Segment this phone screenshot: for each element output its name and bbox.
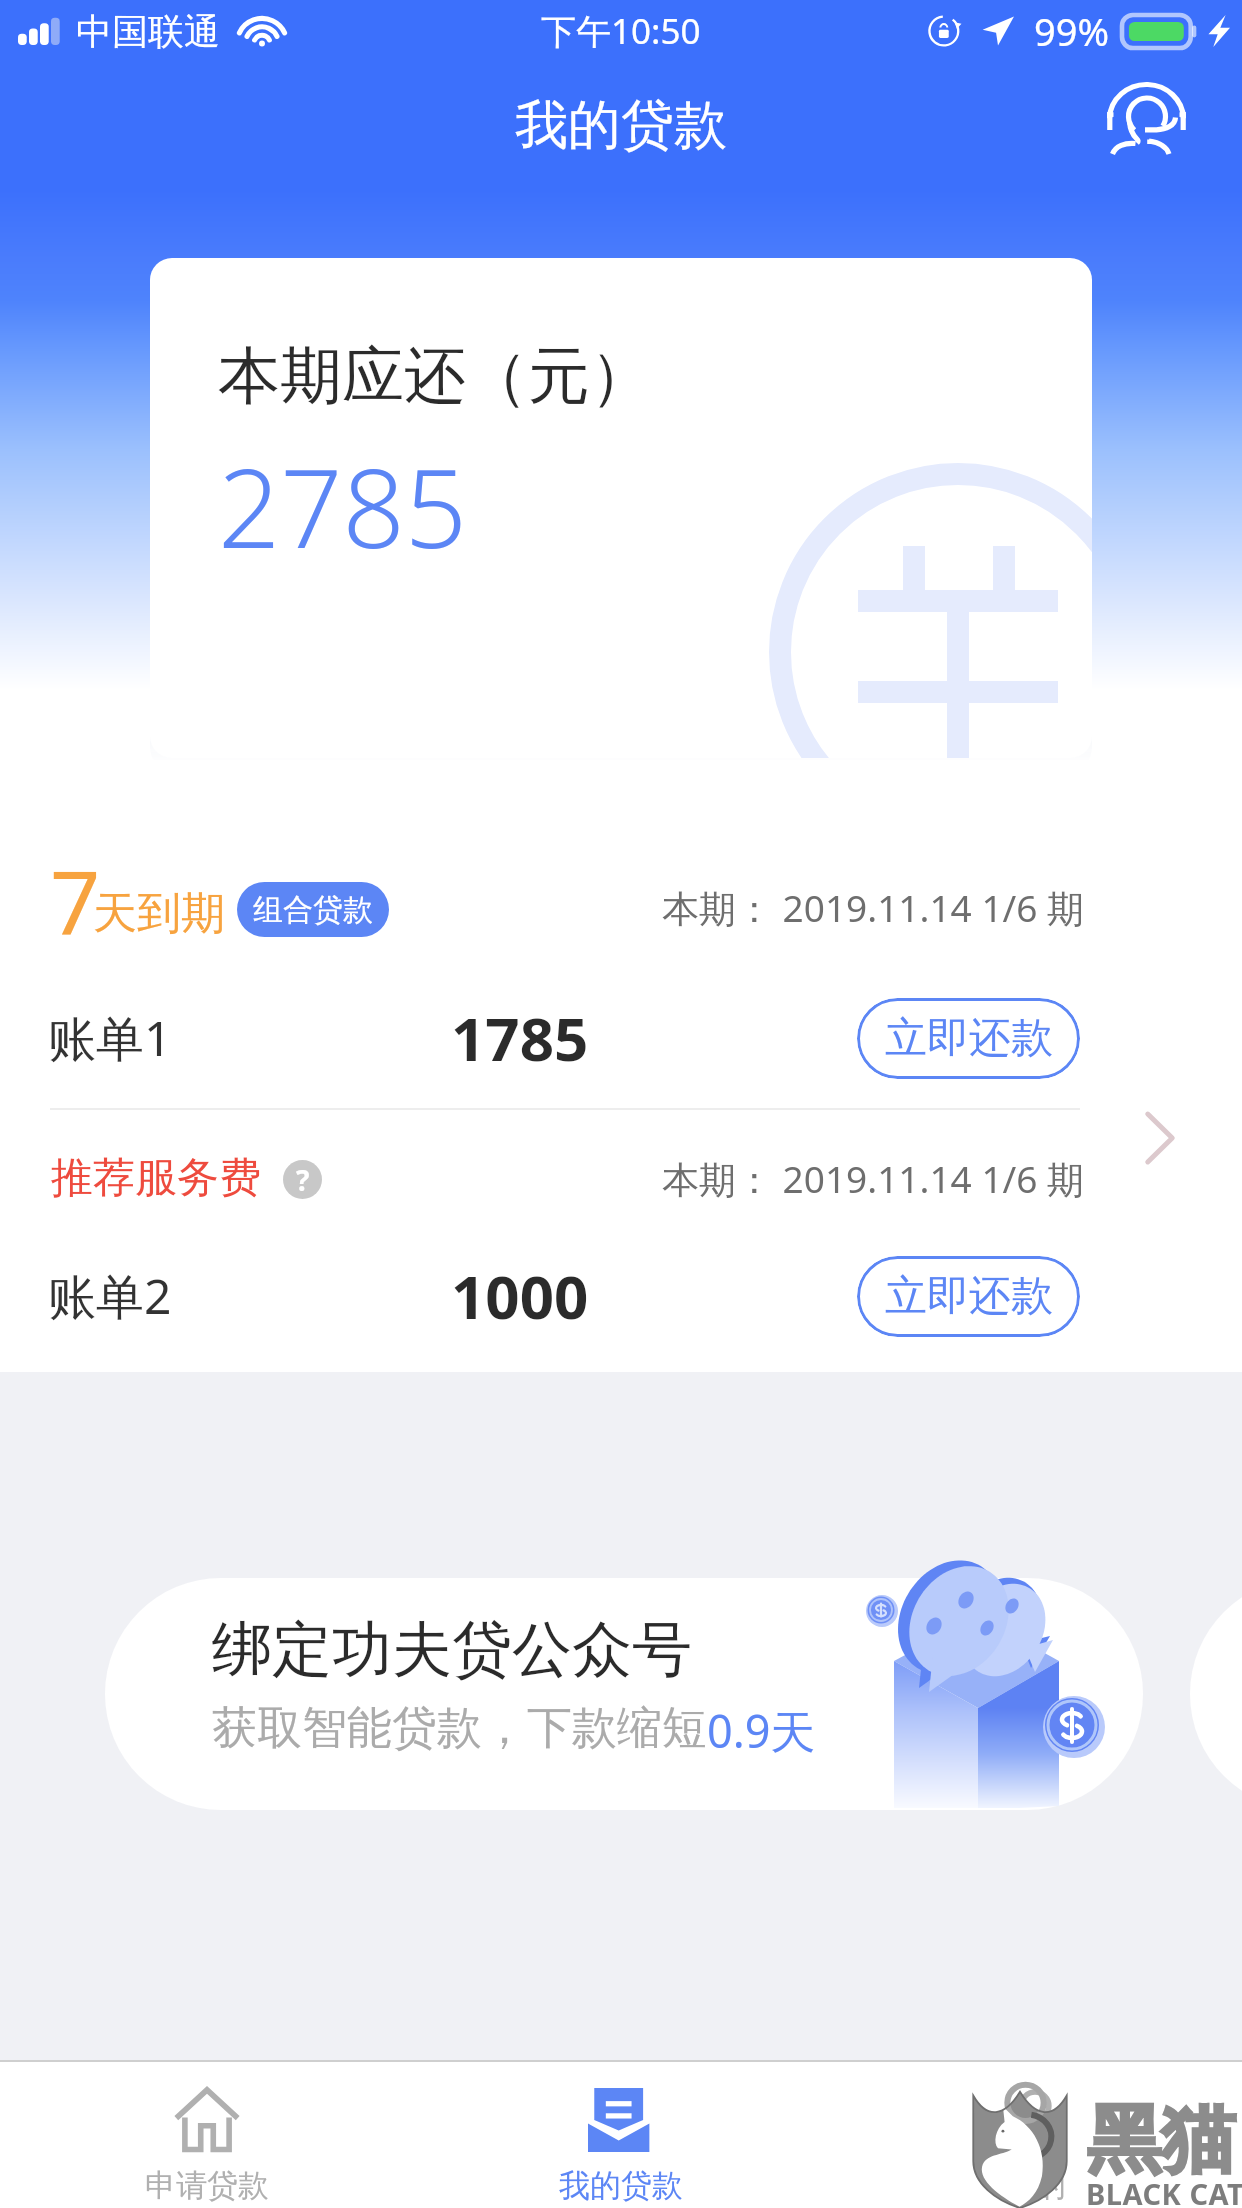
button[interactable]: More: [1130, 1108, 1190, 1168]
staticText: 立即还款: [885, 1012, 1053, 1065]
staticText: 1785: [451, 997, 589, 1079]
staticText: 2785: [218, 431, 467, 579]
staticText: 7: [50, 841, 101, 961]
staticText: 1000: [451, 1255, 589, 1337]
staticText: 下午10:50: [541, 7, 701, 55]
button[interactable]: 绑定功夫贷公众号: [105, 1578, 1143, 1810]
staticText: 99%: [1034, 5, 1110, 57]
staticText: 账单2: [48, 1263, 172, 1329]
staticText: 获取智能贷款，下款缩短: [212, 1700, 707, 1757]
button[interactable]: 立即还款: [857, 1256, 1080, 1337]
button[interactable]: Next promotion: [1190, 1578, 1242, 1810]
staticText: 我的贷款: [559, 2166, 683, 2205]
button[interactable]: 组合贷款: [237, 882, 389, 937]
button[interactable]: 申请贷款: [0, 2062, 414, 2208]
button[interactable]: Customer service: [1102, 79, 1191, 170]
staticText: 我的贷款: [515, 92, 727, 159]
staticText: 天到期: [93, 886, 225, 941]
staticText: 我的: [1004, 2166, 1066, 2205]
staticText: 立即还款: [885, 1270, 1053, 1323]
staticText: 0.9天: [707, 1700, 816, 1761]
button[interactable]: 我的: [828, 2062, 1242, 2208]
staticText: 本期： 2019.11.14 1/6 期: [662, 882, 1085, 933]
staticText: 推荐服务费: [51, 1152, 261, 1205]
button[interactable]: Help: [283, 1160, 322, 1199]
button[interactable]: 立即还款: [857, 998, 1080, 1079]
staticText: 本期： 2019.11.14 1/6 期: [662, 1153, 1085, 1204]
button[interactable]: 本期应还（元）: [150, 258, 1092, 758]
staticText: 本期应还（元）: [218, 337, 652, 415]
button[interactable]: 我的贷款: [414, 2062, 828, 2208]
staticText: 黑猫: [1087, 2094, 1235, 2187]
staticText: 中国联通: [76, 9, 220, 54]
staticText: BLACK CAT: [1086, 2174, 1242, 2208]
staticText: ?: [296, 1161, 310, 1199]
staticText: 绑定功夫贷公众号: [212, 1612, 692, 1688]
staticText: 组合贷款: [253, 891, 373, 929]
staticText: 账单1: [48, 1005, 172, 1071]
staticText: 申请贷款: [145, 2166, 269, 2205]
